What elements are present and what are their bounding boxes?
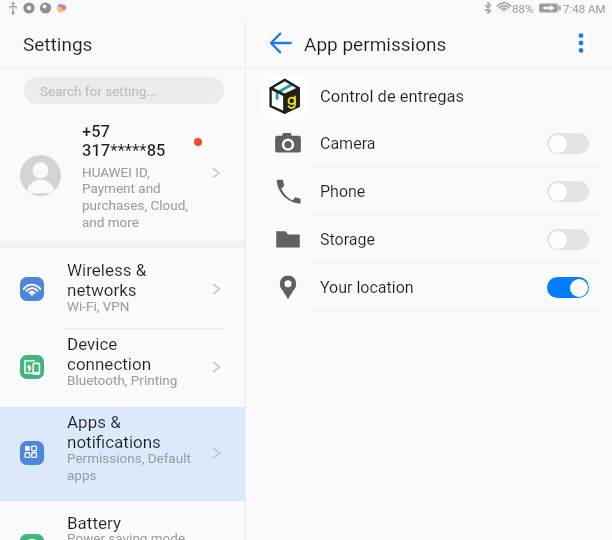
button[interactable]: [0, 407, 245, 501]
button[interactable]: Your location: [246, 263, 612, 311]
staticText: Phone: [320, 182, 366, 201]
button[interactable]: Search for setting...: [24, 77, 224, 104]
button[interactable]: [0, 255, 245, 328]
staticText: Bluetooth, Printing: [67, 372, 178, 388]
button[interactable]: Phone: [246, 167, 612, 215]
staticText: Apps & notifications: [67, 412, 161, 452]
button[interactable]: Back: [269, 31, 293, 55]
staticText: Camera: [320, 134, 376, 153]
staticText: Settings: [23, 33, 93, 55]
staticText: HUAWEI ID, Payment and purchases, Cloud,…: [82, 164, 188, 231]
staticText: Battery: [67, 513, 121, 533]
staticText: Device connection: [67, 334, 152, 374]
staticText: App permissions: [304, 33, 447, 55]
button[interactable]: Settings: [0, 19, 245, 67]
button[interactable]: [0, 329, 245, 407]
staticText: Search for setting...: [40, 83, 158, 99]
staticText: Wireless & networks: [67, 260, 147, 300]
button[interactable]: Storage: [246, 215, 612, 263]
button[interactable]: [0, 508, 245, 540]
staticText: Wi-Fi, VPN: [67, 298, 130, 314]
staticText: 88%: [512, 2, 534, 15]
button[interactable]: Camera: [246, 119, 612, 167]
button[interactable]: +57: [0, 110, 245, 240]
staticText: 7:48 AM: [563, 2, 606, 15]
staticText: Storage: [320, 230, 375, 249]
staticText: Permissions, Default apps: [67, 450, 191, 483]
staticText: Control de entregas: [320, 87, 464, 106]
staticText: Your location: [320, 278, 414, 297]
staticText: 317*****85: [82, 141, 166, 160]
staticText: Power saving mode: [67, 530, 186, 540]
button[interactable]: More options: [569, 31, 593, 55]
staticText: +57: [82, 122, 110, 141]
button[interactable]: [246, 71, 612, 121]
